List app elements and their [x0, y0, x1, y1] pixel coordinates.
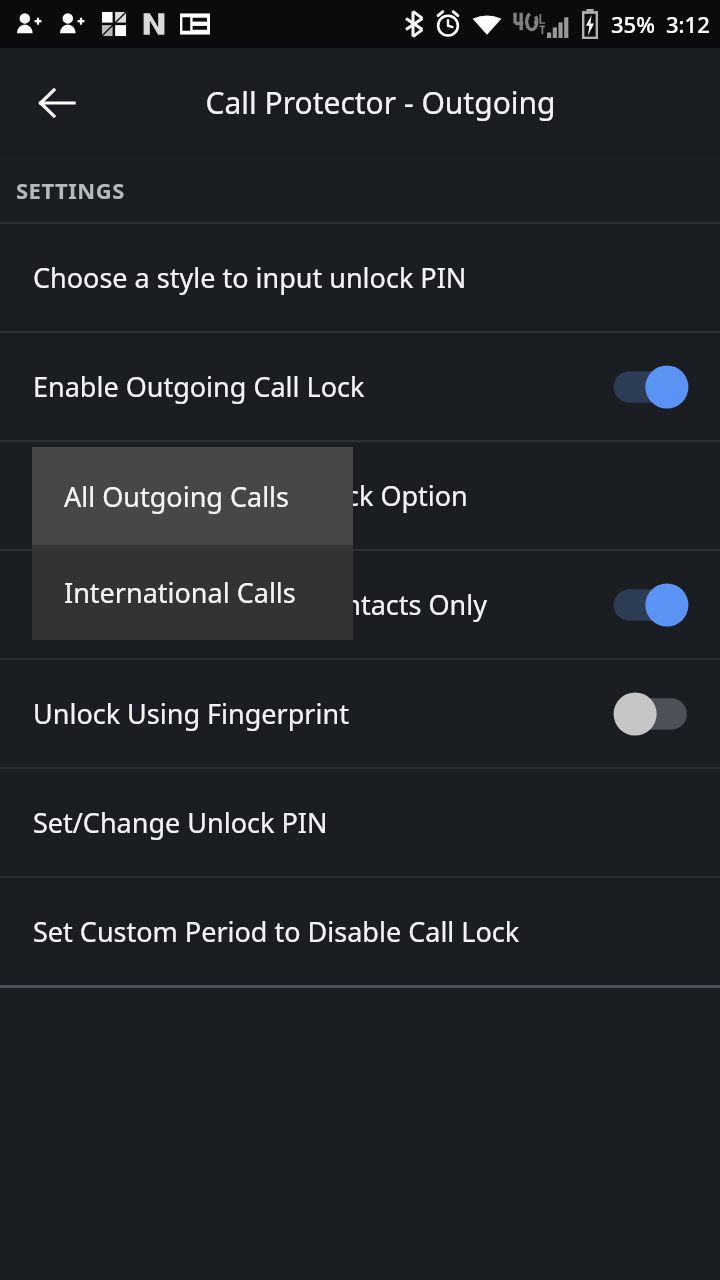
- button[interactable]: Toggle on: [612, 359, 690, 415]
- staticText: Enable Outgoing Call Lock: [33, 368, 612, 405]
- button[interactable]: Back: [25, 71, 89, 135]
- button[interactable]: Toggle off: [612, 686, 690, 742]
- button[interactable]: Choose a style to input unlock PIN: [0, 224, 720, 331]
- staticText: SETTINGS: [16, 175, 125, 205]
- staticText: Lock Calls to Selected Contacts Only: [33, 586, 612, 623]
- staticText: Choose a style to input unlock PIN: [33, 259, 690, 296]
- staticText: Call Protector - Outgoing: [205, 82, 556, 123]
- button[interactable]: Toggle on: [612, 577, 690, 633]
- staticText: Set Custom Period to Disable Call Lock: [33, 913, 690, 950]
- button[interactable]: Choose Outgoing Call Lock Option: [0, 442, 720, 549]
- button[interactable]: Lock Calls to Selected Contacts Only: [0, 551, 720, 658]
- staticText: Set/Change Unlock PIN: [33, 804, 690, 841]
- button[interactable]: Set/Change Unlock PIN: [0, 769, 720, 876]
- staticText: All Outgoing Calls: [64, 478, 290, 515]
- button[interactable]: Set Custom Period to Disable Call Lock: [0, 878, 720, 985]
- button[interactable]: International Calls: [32, 545, 353, 640]
- staticText: 35%: [611, 9, 655, 39]
- button[interactable]: Unlock Using Fingerprint: [0, 660, 720, 767]
- staticText: Choose Outgoing Call Lock Option: [33, 477, 690, 514]
- staticText: Unlock Using Fingerprint: [33, 695, 612, 732]
- staticText: 3:12: [666, 9, 710, 39]
- staticText: International Calls: [64, 574, 296, 611]
- button[interactable]: Enable Outgoing Call Lock: [0, 333, 720, 440]
- button[interactable]: All Outgoing Calls: [32, 447, 353, 545]
